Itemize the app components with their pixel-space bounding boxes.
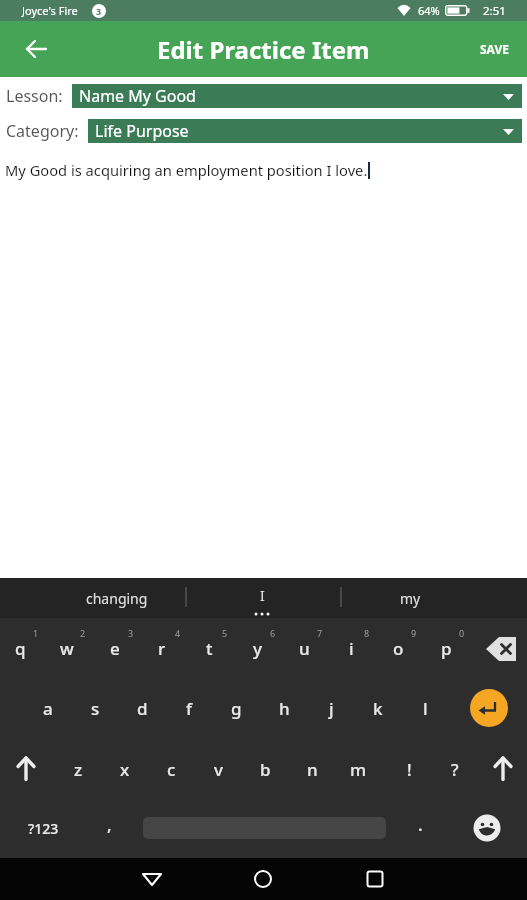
button[interactable]: r <box>142 628 182 668</box>
staticText: m <box>350 758 367 781</box>
button[interactable] <box>137 864 167 894</box>
staticText: 6 <box>270 627 276 639</box>
staticText: y <box>253 637 262 660</box>
staticText: 64% <box>418 3 440 18</box>
button[interactable] <box>20 32 54 66</box>
staticText: Edit Practice Item <box>157 33 370 66</box>
staticText: q <box>15 637 26 660</box>
staticText: w <box>60 637 74 660</box>
staticText: Lesson: <box>6 85 63 107</box>
staticText: e <box>110 637 120 660</box>
staticText: 5 <box>222 627 228 639</box>
button[interactable]: y <box>237 628 277 668</box>
button[interactable]: a <box>28 688 68 728</box>
button[interactable] <box>470 689 508 727</box>
staticText: f <box>186 697 193 720</box>
staticText: ? <box>451 758 459 781</box>
button[interactable]: , <box>89 804 129 844</box>
button[interactable]: i <box>331 628 371 668</box>
button[interactable]: w <box>47 628 87 668</box>
staticText: Category: <box>6 120 79 142</box>
staticText: 8 <box>364 627 370 639</box>
button[interactable]: b <box>245 749 285 789</box>
staticText: 2:51 <box>483 3 506 19</box>
staticText: l <box>423 697 428 720</box>
button[interactable]: v <box>198 749 238 789</box>
staticText: . <box>418 813 423 836</box>
staticText: t <box>206 637 213 660</box>
staticText: r <box>158 637 166 660</box>
staticText: Life Purpose <box>95 120 189 142</box>
button[interactable]: q <box>0 628 40 668</box>
staticText: 2 <box>80 627 86 639</box>
button[interactable]: p <box>426 628 466 668</box>
staticText: i <box>349 637 354 660</box>
staticText: My Good is acquiring an employment posit… <box>5 160 368 180</box>
staticText: changing <box>86 589 148 608</box>
button[interactable]: ? <box>435 749 475 789</box>
staticText: g <box>231 697 242 720</box>
staticText: 1 <box>33 627 39 639</box>
staticText: 4 <box>175 627 181 639</box>
button[interactable]: g <box>216 688 256 728</box>
staticText: h <box>279 697 290 720</box>
button[interactable]: t <box>189 628 229 668</box>
staticText: v <box>214 758 223 781</box>
button[interactable] <box>473 814 501 842</box>
staticText: x <box>120 758 130 781</box>
button[interactable]: I <box>202 578 322 612</box>
button[interactable]: s <box>75 688 115 728</box>
button[interactable] <box>248 864 278 894</box>
staticText: Joyce's Fire <box>22 3 78 18</box>
staticText: Name My Good <box>79 85 196 107</box>
button[interactable]: e <box>95 628 135 668</box>
staticText: my <box>400 589 421 608</box>
staticText: z <box>74 758 83 781</box>
button[interactable]: h <box>264 688 304 728</box>
button[interactable] <box>8 751 44 787</box>
staticText: d <box>137 697 148 720</box>
staticText: ! <box>407 758 412 781</box>
button[interactable]: u <box>284 628 324 668</box>
button[interactable]: k <box>358 688 398 728</box>
button[interactable] <box>481 632 521 668</box>
button[interactable]: x <box>105 749 145 789</box>
button[interactable]: my <box>350 578 470 618</box>
button[interactable]: d <box>122 688 162 728</box>
staticText: u <box>299 637 310 660</box>
staticText: 7 <box>317 627 323 639</box>
button[interactable]: j <box>311 688 351 728</box>
staticText: p <box>441 637 452 660</box>
staticText: n <box>307 758 318 781</box>
staticText: k <box>373 697 383 720</box>
button[interactable]: Name My Good <box>72 84 522 108</box>
staticText: 3 <box>96 5 102 17</box>
button[interactable]: f <box>169 688 209 728</box>
button[interactable]: SAVE <box>474 35 515 63</box>
button[interactable] <box>485 751 521 787</box>
staticText: o <box>393 637 404 660</box>
staticText: ?123 <box>28 819 59 838</box>
button[interactable]: l <box>405 688 445 728</box>
button[interactable]: Life Purpose <box>88 119 522 143</box>
button[interactable]: changing <box>57 578 177 618</box>
staticText: I <box>260 586 265 605</box>
button[interactable]: c <box>151 749 191 789</box>
button[interactable]: ! <box>389 749 429 789</box>
staticText: 0 <box>459 627 465 639</box>
button[interactable]: ?123 <box>15 808 71 848</box>
staticText: 3 <box>128 627 134 639</box>
staticText: a <box>43 697 53 720</box>
button[interactable]: . <box>400 804 440 844</box>
button[interactable]: m <box>338 749 378 789</box>
button[interactable]: o <box>378 628 418 668</box>
button[interactable] <box>360 864 390 894</box>
staticText: s <box>91 697 100 720</box>
staticText: b <box>260 758 271 781</box>
button[interactable]: n <box>292 749 332 789</box>
staticText: j <box>329 697 334 720</box>
button[interactable]: z <box>58 749 98 789</box>
staticText: c <box>167 758 176 781</box>
staticText: , <box>107 813 112 836</box>
